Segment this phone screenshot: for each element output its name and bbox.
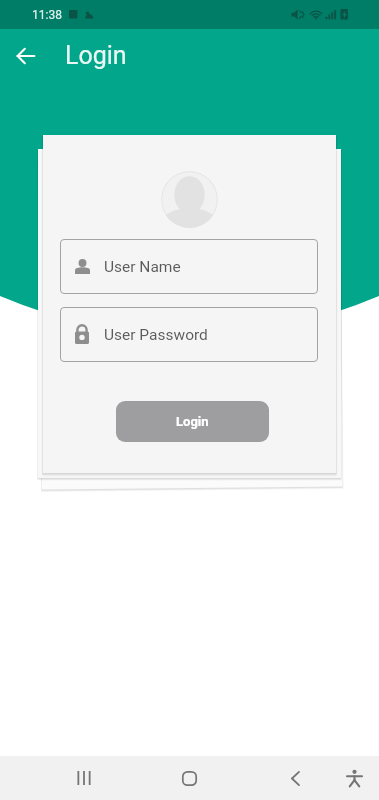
staticText: Login: [65, 41, 127, 70]
button[interactable]: Login: [116, 401, 269, 442]
button[interactable]: Accessibility: [322, 756, 379, 800]
button[interactable]: Home: [147, 756, 232, 800]
button[interactable]: User Name: [60, 239, 318, 294]
button[interactable]: Recents: [41, 756, 126, 800]
button[interactable]: Back: [253, 756, 338, 800]
button[interactable]: User Password: [60, 307, 318, 362]
staticText: Login: [176, 414, 209, 429]
button[interactable]: Back: [4, 34, 48, 78]
staticText: User Name: [104, 258, 181, 276]
staticText: User Password: [104, 326, 208, 344]
staticText: 11:38: [32, 8, 62, 22]
